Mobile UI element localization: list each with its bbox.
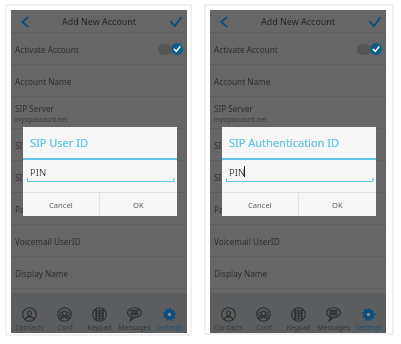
button[interactable]: SIP Server (11, 97, 187, 129)
button[interactable]: Password (210, 193, 386, 225)
button[interactable]: Settings (351, 293, 386, 333)
staticText: OK (133, 200, 144, 210)
staticText: PIN (229, 166, 246, 179)
button[interactable]: OK (299, 193, 376, 216)
staticText: Cancel (248, 200, 272, 210)
staticText: Voicemail UserID (15, 236, 81, 247)
button[interactable]: Messages (117, 293, 152, 333)
staticText: Messages (118, 323, 151, 333)
button[interactable]: Back (214, 12, 234, 32)
staticText: SIP User ID (214, 140, 258, 151)
staticText: Contacts (15, 323, 44, 333)
staticText: Contacts (214, 323, 243, 333)
button[interactable]: Activate Account (210, 33, 386, 65)
staticText: SIP Authentication ID (214, 172, 296, 183)
staticText: SIP User ID (30, 135, 88, 150)
staticText: Keypad (286, 323, 311, 333)
staticText: Activate Account (214, 44, 278, 55)
button[interactable]: Messages (316, 293, 351, 333)
staticText: Account Name (214, 76, 271, 87)
button[interactable]: SIP Server (210, 97, 386, 129)
button[interactable]: Conf (246, 293, 281, 333)
button[interactable]: Save (166, 12, 186, 32)
staticText: PIN (30, 166, 47, 179)
button[interactable]: Voicemail UserID (210, 225, 386, 257)
button[interactable]: Contacts (11, 293, 47, 333)
button[interactable]: SIP Authentication ID (11, 161, 187, 193)
button[interactable]: Contacts (210, 293, 246, 333)
button[interactable]: OK (100, 193, 177, 216)
staticText: OK (332, 200, 343, 210)
staticText: SIP User ID (15, 140, 59, 151)
staticText: Password (214, 204, 252, 215)
button[interactable]: Settings (152, 293, 187, 333)
button[interactable]: SIP User ID (11, 129, 187, 161)
staticText: SIP Server (214, 103, 254, 114)
button[interactable]: Voicemail UserID (11, 225, 187, 257)
staticText: mysipaccount.net (214, 115, 267, 124)
button[interactable]: Activate Account (11, 33, 187, 65)
button[interactable]: Display Name (210, 257, 386, 289)
staticText: Settings (355, 323, 382, 333)
staticText: Activate Account (15, 44, 79, 55)
staticText: SIP Authentication ID (15, 172, 97, 183)
staticText: SIP Authentication ID (229, 135, 340, 150)
staticText: Messages (317, 323, 350, 333)
button[interactable]: Conf (47, 293, 82, 333)
button[interactable]: Password (11, 193, 187, 225)
staticText: Cancel (49, 200, 73, 210)
staticText: Conf (57, 323, 73, 333)
staticText: Settings (156, 323, 183, 333)
button[interactable]: Cancel (222, 193, 298, 216)
staticText: mysipaccount.net (15, 115, 68, 124)
staticText: Display Name (214, 268, 268, 279)
staticText: Voicemail UserID (214, 236, 280, 247)
staticText: Add New Account (261, 16, 336, 28)
staticText: Add New Account (62, 16, 137, 28)
button[interactable]: Back (15, 12, 35, 32)
button[interactable]: Save (365, 12, 385, 32)
button[interactable]: Account Name (11, 65, 187, 97)
staticText: SIP Server (15, 103, 55, 114)
button[interactable]: Cancel (23, 193, 99, 216)
staticText: Password (15, 204, 53, 215)
staticText: Conf (256, 323, 272, 333)
button[interactable]: Account Name (210, 65, 386, 97)
button[interactable]: SIP Authentication ID (210, 161, 386, 193)
staticText: Display Name (15, 268, 69, 279)
button[interactable]: SIP User ID (210, 129, 386, 161)
button[interactable]: Keypad (82, 293, 117, 333)
staticText: Keypad (87, 323, 112, 333)
button[interactable]: Display Name (11, 257, 187, 289)
button[interactable]: Keypad (281, 293, 316, 333)
staticText: Account Name (15, 76, 72, 87)
